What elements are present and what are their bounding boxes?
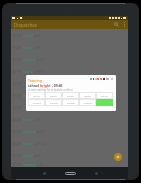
button[interactable]: Back xyxy=(37,167,51,179)
staticText: ready xyxy=(23,117,33,122)
button[interactable]: Add xyxy=(114,153,122,161)
staticText: waiting xyxy=(23,57,36,62)
button[interactable]: 16:35 xyxy=(11,149,128,161)
button[interactable]: 14:10 xyxy=(11,101,128,113)
button[interactable]: 09:10 xyxy=(28,92,45,99)
staticText: p15 xyxy=(34,105,41,110)
staticText: p11 xyxy=(34,81,41,86)
staticText: Dispatches xyxy=(14,22,38,28)
staticText: 09:50 xyxy=(101,94,108,97)
staticText: p23 xyxy=(34,153,41,158)
staticText: p04 xyxy=(34,45,41,50)
staticText: ready xyxy=(23,105,33,110)
button[interactable]: 13:30 xyxy=(11,89,128,101)
button[interactable]: Close xyxy=(110,77,113,80)
button[interactable]: 12:55 xyxy=(11,77,128,89)
button[interactable]: 09:40 xyxy=(79,92,96,99)
staticText: waiting xyxy=(23,162,36,167)
button[interactable]: 12:15 xyxy=(11,65,128,77)
staticText: - 09:45 xyxy=(51,83,63,88)
button[interactable]: Search xyxy=(112,20,121,29)
button[interactable]: 09:20 xyxy=(45,92,62,99)
button[interactable]: 09:30 xyxy=(62,92,79,99)
staticText: ready xyxy=(23,153,33,158)
button[interactable]: 010:10 xyxy=(28,99,45,106)
staticText: 010:40 xyxy=(84,101,92,104)
staticText: 09:40 xyxy=(84,94,91,97)
staticText: 09:10 xyxy=(33,94,40,97)
staticText: 010:30 xyxy=(67,101,75,104)
staticText: waiting xyxy=(23,129,36,134)
button[interactable]: Home xyxy=(60,167,80,179)
staticText: is now waiting for schedule confirm xyxy=(28,88,73,92)
button[interactable]: 09:50 xyxy=(96,92,113,99)
staticText: ready xyxy=(23,69,33,74)
button[interactable]: More options xyxy=(121,20,127,29)
staticText: 09:20 xyxy=(50,94,57,97)
staticText: 09:30 xyxy=(67,94,74,97)
staticText: ready xyxy=(23,141,33,146)
button[interactable]: 010:30 xyxy=(62,99,79,106)
staticText: 010:20 xyxy=(50,101,58,104)
staticText: p13 xyxy=(37,93,44,98)
staticText: school xyxy=(28,83,40,88)
staticText: ready xyxy=(23,33,33,38)
staticText: waiting xyxy=(23,93,36,98)
staticText: ready xyxy=(23,81,33,86)
button[interactable]: 17:15 xyxy=(11,161,128,167)
button[interactable]: 010:20 xyxy=(45,99,62,106)
staticText: Training xyxy=(28,78,43,83)
staticText: ready xyxy=(23,45,33,50)
staticText: bright xyxy=(40,83,51,88)
button[interactable]: 010:40 xyxy=(79,99,96,106)
staticText: 010:10 xyxy=(33,101,41,104)
button[interactable]: Recents xyxy=(89,167,103,179)
